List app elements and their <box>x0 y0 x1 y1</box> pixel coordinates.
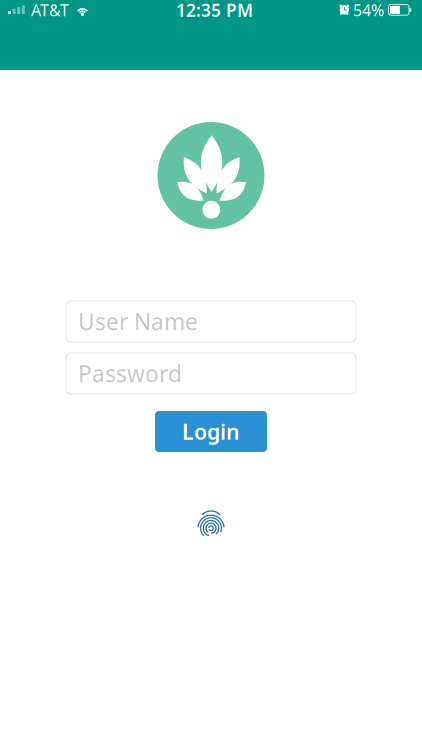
staticText: 54% <box>353 0 384 21</box>
staticText: Login <box>182 417 240 446</box>
staticText: AT&T <box>31 0 69 21</box>
staticText: Password <box>78 358 182 388</box>
staticText: User Name <box>78 306 198 336</box>
button[interactable]: Sign in with Touch ID <box>186 501 236 555</box>
staticText: 12:35 PM <box>176 0 253 21</box>
button[interactable]: Login <box>155 411 267 452</box>
